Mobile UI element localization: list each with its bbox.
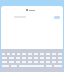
button[interactable]: Key (16, 57, 20, 59)
button[interactable]: Key (28, 57, 32, 59)
button[interactable]: Key (34, 61, 38, 63)
button[interactable]: Key (46, 57, 50, 59)
button[interactable]: Key (7, 53, 10, 55)
button[interactable]: Key (40, 57, 44, 59)
button[interactable]: Key (52, 57, 56, 59)
button[interactable]: Key (9, 61, 14, 63)
button[interactable]: Key (2, 53, 5, 55)
button[interactable]: Key (34, 53, 38, 55)
button[interactable] (54, 16, 60, 19)
button[interactable]: Key (46, 61, 50, 63)
button[interactable]: Key (9, 57, 14, 59)
button[interactable]: Key (40, 61, 44, 63)
button[interactable]: Key (22, 53, 26, 55)
button[interactable] (1, 6, 63, 14)
button[interactable]: Key (28, 61, 32, 63)
button[interactable]: Key (58, 53, 62, 55)
button[interactable]: Key (2, 61, 7, 63)
button[interactable]: Key (58, 61, 62, 63)
button[interactable]: Key (40, 53, 44, 55)
button[interactable]: Key (46, 53, 50, 55)
button[interactable]: Key (12, 53, 15, 55)
button[interactable]: Key (52, 53, 56, 55)
button[interactable]: Key (17, 53, 20, 55)
button[interactable]: Key (34, 57, 38, 59)
button[interactable]: Key (22, 61, 26, 63)
button[interactable]: Key (28, 53, 32, 55)
button[interactable]: Key (58, 57, 62, 59)
button[interactable]: Key (2, 57, 7, 59)
button[interactable]: Key (52, 61, 56, 63)
button[interactable]: Key (22, 57, 26, 59)
button[interactable]: Key (16, 61, 20, 63)
